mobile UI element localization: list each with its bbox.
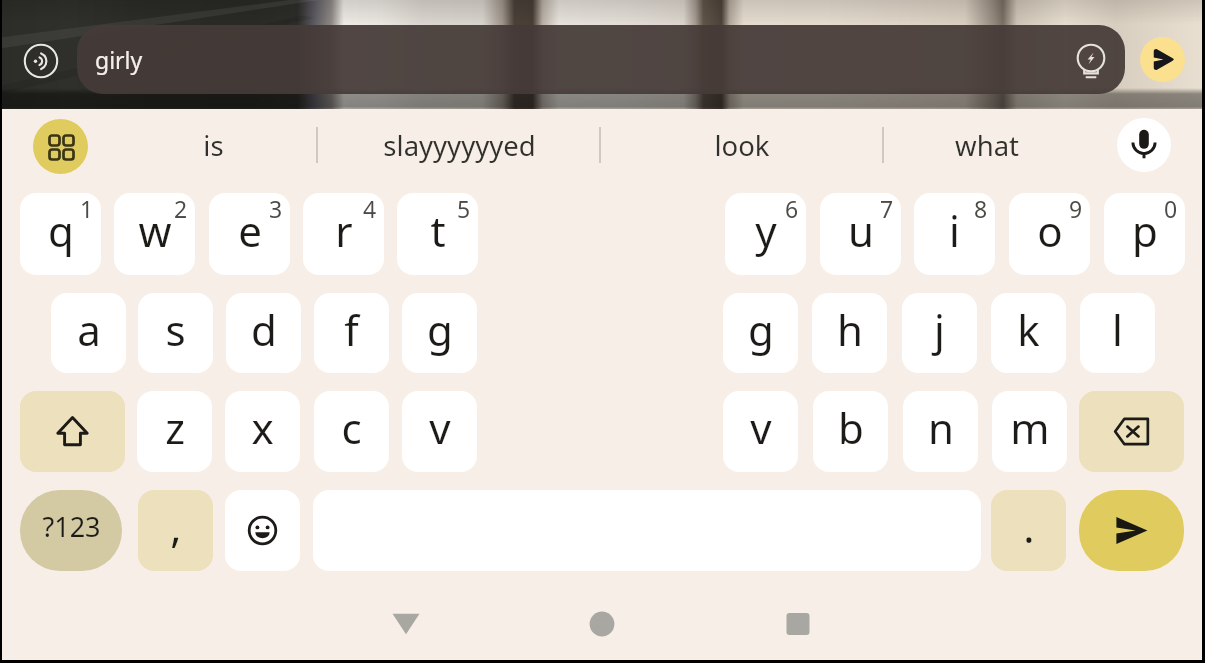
staticText: 8 xyxy=(974,193,988,224)
button[interactable]: Hide keyboard xyxy=(366,584,446,663)
staticText: l xyxy=(1112,301,1123,358)
button[interactable]: n xyxy=(903,391,978,472)
button[interactable]: Home xyxy=(562,584,642,663)
staticText: q xyxy=(48,202,74,259)
button[interactable]: l xyxy=(1080,293,1155,373)
staticText: x xyxy=(251,399,274,456)
button[interactable]: s xyxy=(138,293,213,373)
staticText: , xyxy=(170,498,182,555)
button[interactable]: Open toolbar xyxy=(33,119,88,174)
button[interactable]: t xyxy=(397,193,478,275)
button[interactable]: v xyxy=(402,391,477,472)
staticText: v xyxy=(429,399,451,456)
staticText: k xyxy=(1017,301,1040,358)
button[interactable]: Backspace xyxy=(1079,391,1184,472)
staticText: a xyxy=(77,301,101,358)
button[interactable]: Send xyxy=(1079,490,1184,571)
button[interactable]: Voice input xyxy=(1117,118,1171,172)
button[interactable]: r xyxy=(303,193,384,275)
staticText: g xyxy=(427,301,453,358)
staticText: y xyxy=(755,202,777,259)
button[interactable]: a xyxy=(51,293,126,373)
button[interactable]: , xyxy=(138,490,213,571)
button[interactable]: slayyyyyyed xyxy=(317,109,601,182)
staticText: 9 xyxy=(1069,193,1083,224)
staticText: v xyxy=(750,399,772,456)
button[interactable]: u xyxy=(820,193,901,275)
staticText: p xyxy=(1132,202,1158,259)
staticText: m xyxy=(1010,399,1050,456)
button[interactable]: girly xyxy=(77,25,1125,94)
button[interactable]: Send xyxy=(1140,37,1185,82)
button[interactable]: Shift xyxy=(20,391,125,472)
button[interactable]: v xyxy=(723,391,798,472)
staticText: z xyxy=(165,399,185,456)
staticText: s xyxy=(165,301,186,358)
button[interactable]: y xyxy=(725,193,806,275)
button[interactable]: x xyxy=(225,391,300,472)
button[interactable]: p xyxy=(1104,193,1185,275)
staticText: 4 xyxy=(363,193,377,224)
button[interactable]: g xyxy=(723,293,798,373)
button[interactable]: Smart suggestions xyxy=(1071,40,1111,80)
staticText: h xyxy=(837,301,863,358)
staticText: i xyxy=(949,202,960,259)
button[interactable]: is xyxy=(110,109,317,182)
button[interactable]: i xyxy=(914,193,995,275)
staticText: w xyxy=(138,202,172,259)
staticText: slayyyyyyed xyxy=(383,127,536,164)
button[interactable]: m xyxy=(992,391,1067,472)
button[interactable]: j xyxy=(902,293,977,373)
staticText: g xyxy=(748,301,774,358)
button[interactable]: ?123 xyxy=(20,490,122,571)
staticText: 3 xyxy=(269,193,283,224)
staticText: e xyxy=(238,202,262,259)
staticText: u xyxy=(848,202,874,259)
button[interactable]: o xyxy=(1009,193,1090,275)
staticText: girly xyxy=(95,44,143,75)
staticText: o xyxy=(1037,202,1063,259)
staticText: ?123 xyxy=(42,508,101,545)
button[interactable]: z xyxy=(137,391,212,472)
button[interactable]: k xyxy=(991,293,1066,373)
button[interactable]: e xyxy=(209,193,290,275)
staticText: b xyxy=(838,399,864,456)
button[interactable]: . xyxy=(991,490,1066,571)
staticText: . xyxy=(1023,498,1035,555)
staticText: look xyxy=(714,127,770,164)
staticText: f xyxy=(344,301,359,358)
button[interactable]: h xyxy=(812,293,887,373)
button[interactable]: Recent apps xyxy=(758,584,838,663)
button[interactable]: w xyxy=(114,193,195,275)
staticText: j xyxy=(934,301,945,358)
staticText: n xyxy=(928,399,954,456)
button[interactable]: d xyxy=(226,293,301,373)
button[interactable]: Nearby share xyxy=(23,43,59,79)
button[interactable]: b xyxy=(813,391,888,472)
button[interactable]: f xyxy=(314,293,389,373)
staticText: 2 xyxy=(174,193,188,224)
staticText: c xyxy=(341,399,362,456)
staticText: 5 xyxy=(457,193,471,224)
staticText: 6 xyxy=(785,193,799,224)
button[interactable]: q xyxy=(20,193,101,275)
button[interactable]: c xyxy=(314,391,389,472)
button[interactable]: Emoji xyxy=(225,490,300,571)
staticText: what xyxy=(955,127,1019,164)
staticText: d xyxy=(251,301,277,358)
staticText: 1 xyxy=(80,193,94,224)
button[interactable]: g xyxy=(402,293,477,373)
button[interactable]: look xyxy=(600,109,883,182)
staticText: t xyxy=(430,202,446,259)
staticText: 7 xyxy=(880,193,894,224)
staticText: r xyxy=(335,202,353,259)
button[interactable]: what xyxy=(883,109,1091,182)
staticText: 0 xyxy=(1164,193,1178,224)
staticText: is xyxy=(203,127,224,164)
